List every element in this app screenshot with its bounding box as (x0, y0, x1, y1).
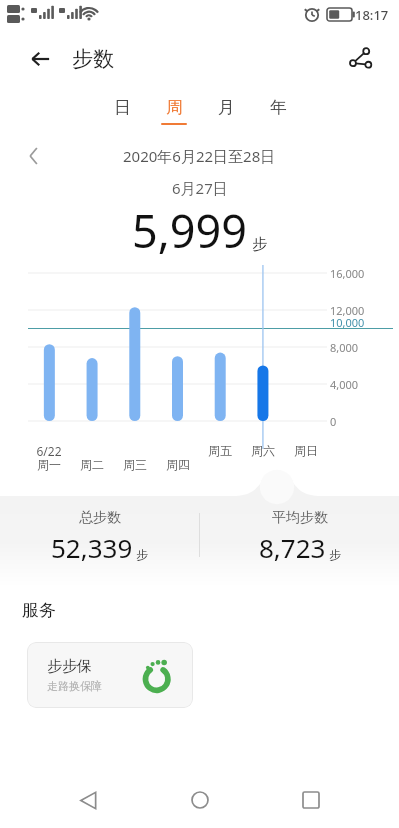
button[interactable]: 步步保 (27, 642, 193, 708)
staticText: 2020年6月22日至28日 (123, 146, 276, 166)
staticText: 周一 (31, 457, 67, 472)
staticText: 52,339 (51, 530, 133, 565)
button[interactable]: 周 (148, 88, 200, 134)
staticText: 4,000 (330, 377, 392, 392)
staticText: 周二 (74, 457, 110, 472)
staticText: 8,723 (259, 530, 326, 565)
button[interactable]: 总步数 (0, 509, 199, 565)
button[interactable]: Home (176, 776, 224, 824)
staticText: 步数 (72, 46, 114, 72)
staticText: 周日 (288, 443, 324, 458)
staticText: 日 (114, 97, 131, 118)
staticText: 年 (270, 97, 287, 118)
staticText: 18:17 (355, 6, 389, 24)
staticText: 16,000 (330, 266, 392, 281)
staticText: 周五 (202, 443, 238, 458)
staticText: 步 (136, 547, 148, 562)
staticText: 步 (252, 235, 267, 254)
staticText: 走路换保障 (47, 679, 102, 693)
button[interactable]: 平均步数 (200, 509, 399, 565)
staticText: 周 (166, 97, 183, 118)
staticText: 8,000 (330, 340, 392, 355)
staticText: 0 (330, 414, 392, 429)
button[interactable]: 年 (252, 88, 304, 134)
staticText: 步步保 (47, 657, 92, 676)
staticText: 月 (218, 97, 235, 118)
staticText: 服务 (22, 600, 56, 621)
staticText: 平均步数 (272, 509, 328, 527)
staticText: 10,000 (330, 315, 392, 330)
button[interactable]: 日 (96, 88, 148, 134)
button[interactable]: 月 (200, 88, 252, 134)
staticText: 总步数 (79, 509, 121, 527)
staticText: 6/22 (31, 443, 67, 459)
staticText: 5,999 (132, 200, 248, 261)
button[interactable]: Previous week (16, 138, 52, 174)
staticText: 周六 (245, 443, 281, 458)
staticText: 周三 (117, 457, 153, 472)
button[interactable]: Back (20, 39, 60, 79)
staticText: 周四 (160, 457, 196, 472)
button[interactable]: Share (339, 38, 381, 80)
staticText: 步 (329, 547, 341, 562)
button[interactable]: Recents (287, 776, 335, 824)
staticText: 12,000 (330, 303, 392, 318)
button[interactable]: Back (64, 776, 112, 824)
staticText: 6月27日 (172, 178, 228, 198)
